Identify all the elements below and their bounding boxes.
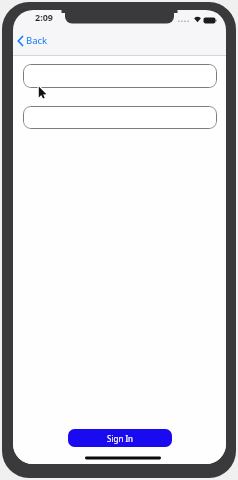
staticText: Back (26, 34, 48, 47)
button[interactable]: Sign In (68, 429, 172, 447)
button[interactable] (23, 64, 217, 88)
button[interactable] (23, 106, 217, 129)
staticText: 2:09 (35, 11, 53, 23)
staticText: Sign In (107, 433, 134, 444)
button[interactable]: Back (16, 33, 48, 48)
